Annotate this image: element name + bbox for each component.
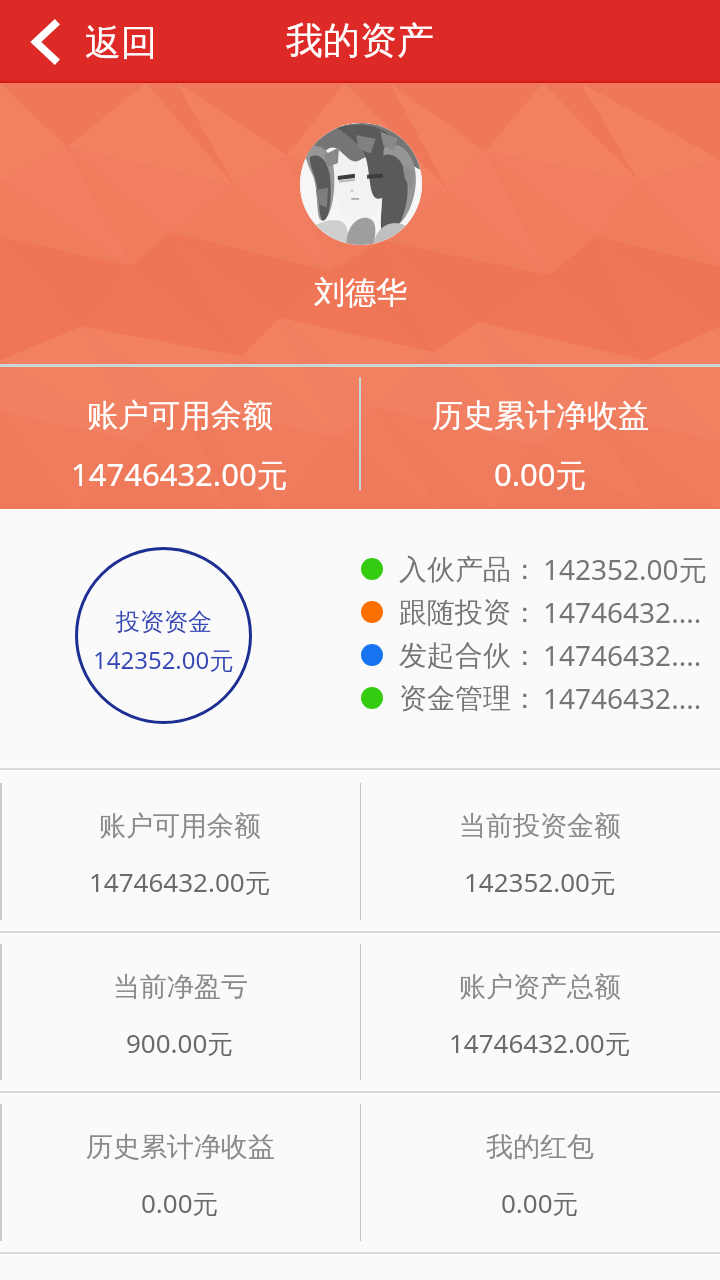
staticText: 历史累计净收益 bbox=[86, 1130, 275, 1164]
staticText: 历史累计净收益 bbox=[432, 396, 649, 435]
staticText: 当前净盈亏 bbox=[113, 970, 248, 1004]
button[interactable]: 我的红包 bbox=[360, 1093, 720, 1252]
button[interactable]: 投资资金 142352.00元 bbox=[75, 547, 252, 724]
staticText: 刘德华 bbox=[314, 273, 407, 312]
staticText: 投资资金 bbox=[116, 607, 212, 637]
button[interactable]: 账户可用余额 bbox=[0, 772, 360, 931]
button[interactable]: 当前净盈亏 bbox=[0, 933, 360, 1091]
button[interactable]: 账户可用余额 bbox=[0, 377, 359, 497]
staticText: 14746432.... bbox=[543, 636, 702, 674]
staticText: 14746432.00元 bbox=[89, 864, 271, 900]
staticText: 入伙产品： bbox=[399, 552, 539, 587]
staticText: 账户可用余额 bbox=[99, 809, 261, 843]
staticText: 跟随投资： bbox=[399, 595, 539, 630]
staticText: 14746432.00元 bbox=[71, 453, 288, 495]
button[interactable]: 入伙产品： bbox=[355, 548, 707, 590]
button[interactable]: 当前投资金额 bbox=[360, 772, 720, 931]
staticText: 14746432.... bbox=[543, 593, 702, 631]
staticText: 账户资产总额 bbox=[459, 970, 621, 1004]
staticText: 14746432.00元 bbox=[449, 1025, 631, 1061]
staticText: 0.00元 bbox=[141, 1185, 219, 1221]
button[interactable]: 跟随投资： bbox=[355, 591, 702, 633]
button[interactable]: Back 返回 bbox=[0, 11, 177, 73]
staticText: 142352.00元 bbox=[464, 864, 616, 900]
button[interactable]: Profile avatar bbox=[300, 123, 422, 245]
staticText: 0.00元 bbox=[501, 1185, 579, 1221]
staticText: 账户可用余额 bbox=[87, 396, 273, 435]
button[interactable]: 历史累计净收益 bbox=[361, 377, 720, 497]
button[interactable]: 发起合伙： bbox=[355, 634, 702, 676]
staticText: 资金管理： bbox=[399, 681, 539, 716]
button[interactable]: 历史累计净收益 bbox=[0, 1093, 360, 1252]
staticText: 当前投资金额 bbox=[459, 809, 621, 843]
staticText: 返回 bbox=[85, 20, 157, 65]
staticText: 14746432.... bbox=[543, 679, 702, 717]
staticText: 发起合伙： bbox=[399, 638, 539, 673]
staticText: 我的红包 bbox=[486, 1130, 594, 1164]
staticText: 我的资产 bbox=[286, 17, 434, 64]
button[interactable]: 账户资产总额 bbox=[360, 933, 720, 1091]
staticText: 0.00元 bbox=[494, 453, 587, 495]
button[interactable]: 资金管理： bbox=[355, 677, 702, 719]
staticText: 900.00元 bbox=[126, 1025, 234, 1061]
staticText: 142352.00元 bbox=[93, 643, 234, 676]
staticText: 142352.00元 bbox=[543, 550, 707, 588]
